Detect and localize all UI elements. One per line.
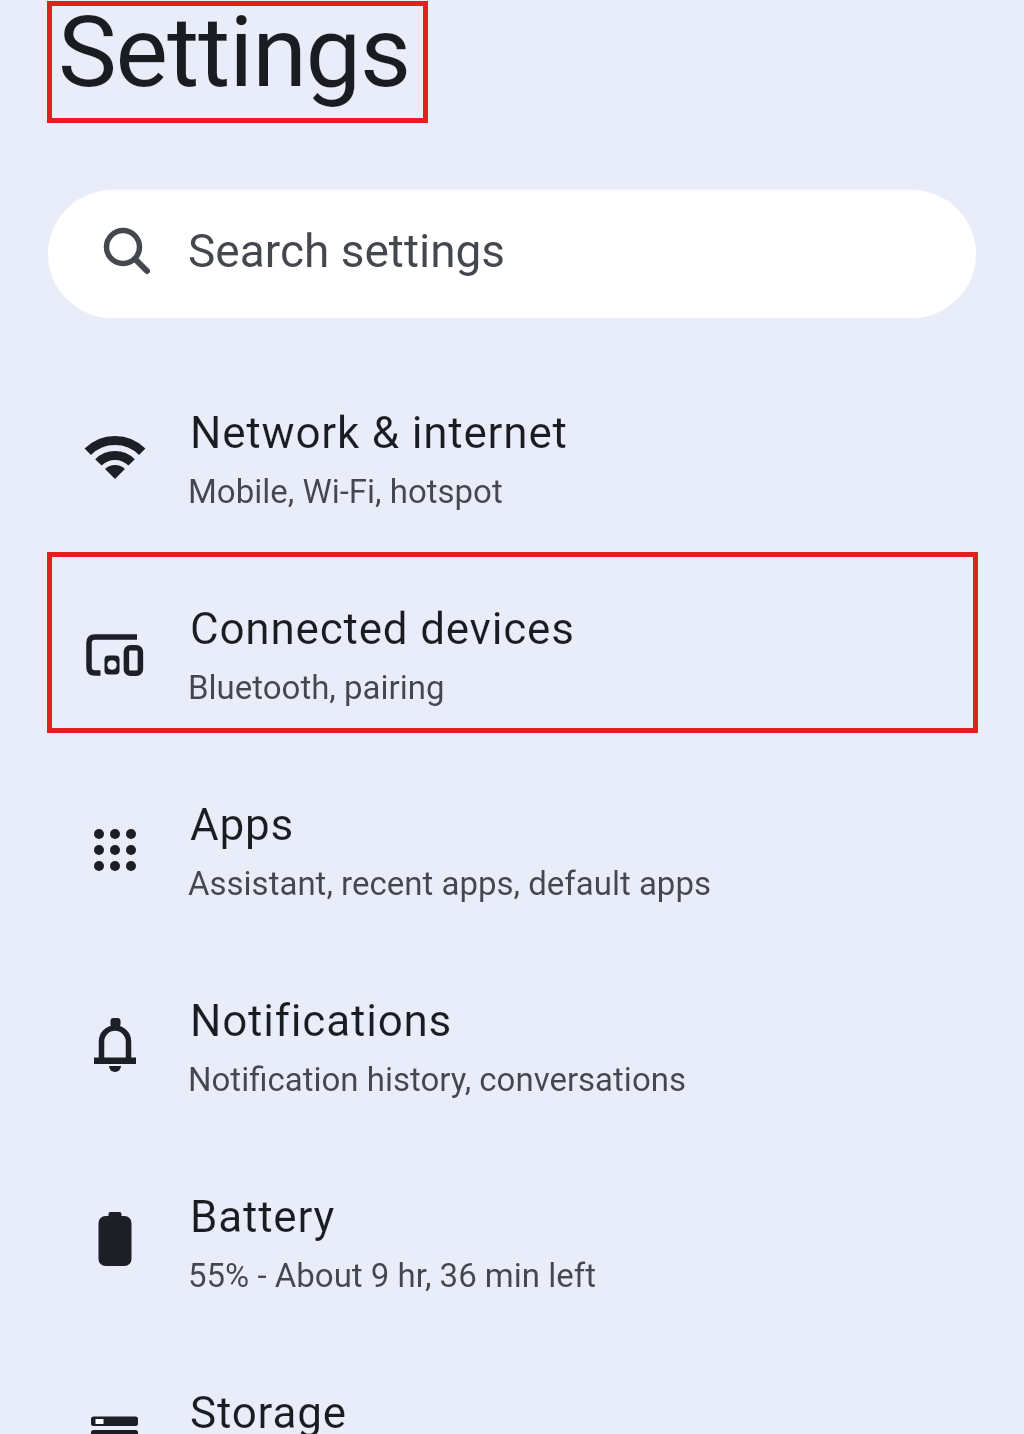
staticText: Apps (190, 799, 295, 851)
staticText: Network & internet (190, 407, 568, 459)
button[interactable]: Apps (0, 750, 1024, 944)
button[interactable]: Battery (0, 1142, 1024, 1336)
button[interactable]: Storage (0, 1338, 1024, 1434)
staticText: Mobile, Wi-Fi, hotspot (188, 472, 503, 511)
staticText: Battery (190, 1191, 336, 1243)
staticText: Search settings (188, 224, 506, 278)
staticText: Bluetooth, pairing (188, 668, 445, 707)
button[interactable]: Network & internet (0, 358, 1024, 552)
staticText: Assistant, recent apps, default apps (188, 864, 711, 903)
staticText: Settings (58, 0, 410, 110)
staticText: Storage (190, 1387, 347, 1434)
button[interactable]: Notifications (0, 946, 1024, 1140)
staticText: 55% - About 9 hr, 36 min left (188, 1256, 597, 1295)
staticText: Connected devices (190, 603, 575, 655)
button[interactable]: Connected devices (0, 554, 1024, 748)
staticText: Notification history, conversations (188, 1060, 686, 1099)
button[interactable] (48, 190, 976, 318)
staticText: Notifications (190, 995, 453, 1047)
